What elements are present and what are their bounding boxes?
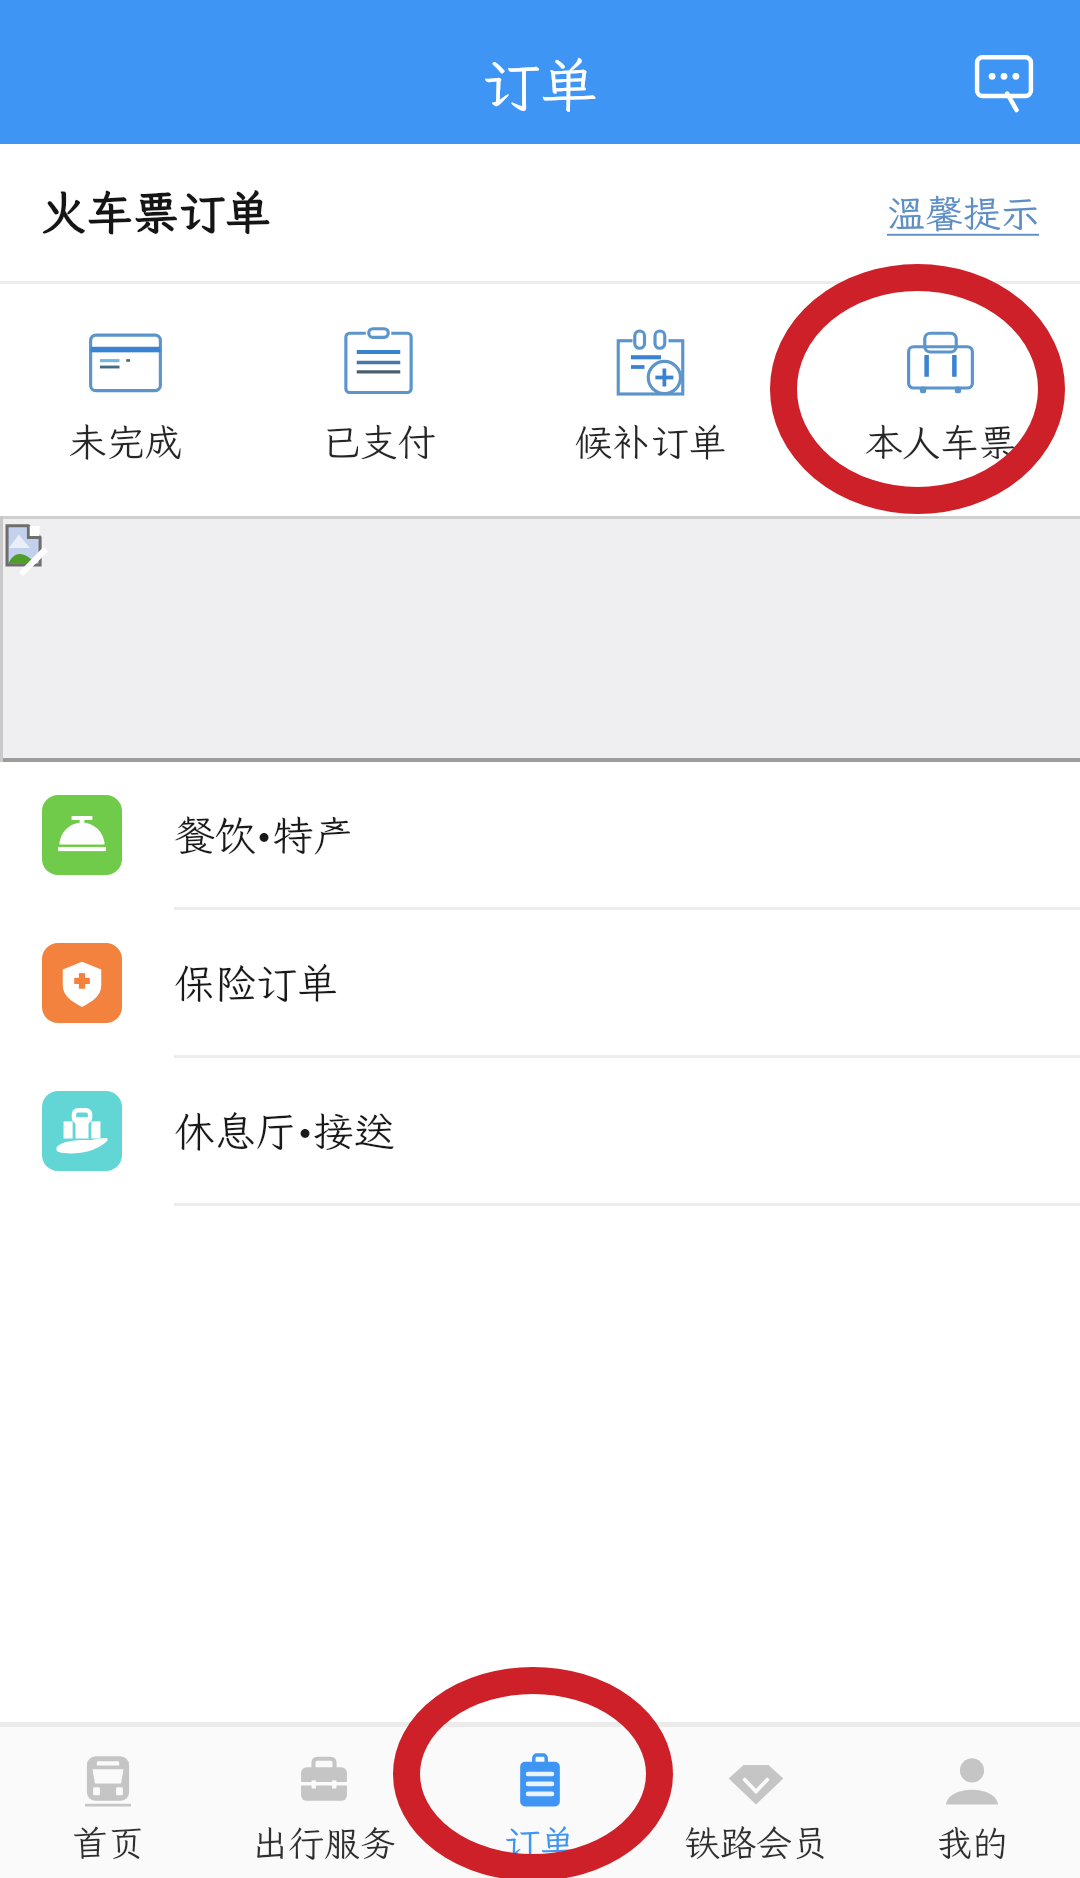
- button[interactable]: 餐饮•特产: [0, 762, 1080, 910]
- staticText: 出行服务: [252, 1819, 397, 1866]
- staticText: 订单: [482, 46, 599, 122]
- staticText: 首页: [72, 1819, 145, 1866]
- staticText: 我的: [936, 1819, 1009, 1866]
- button[interactable]: 已支付: [248, 284, 508, 516]
- staticText: 火车票订单: [41, 182, 271, 243]
- staticText: 温馨提示: [887, 188, 1040, 238]
- button[interactable]: 我的: [864, 1727, 1080, 1878]
- staticText: 已支付: [321, 417, 436, 467]
- staticText: 未完成: [68, 417, 183, 467]
- staticText: 本人车票: [864, 417, 1017, 467]
- button[interactable]: 本人车票: [810, 284, 1070, 516]
- button[interactable]: 首页: [0, 1727, 216, 1878]
- button[interactable]: 未完成: [0, 284, 255, 516]
- staticText: 订单: [504, 1819, 577, 1866]
- staticText: 铁路会员: [684, 1819, 829, 1866]
- button[interactable]: 出行服务: [216, 1727, 432, 1878]
- button[interactable]: 休息厅•接送: [0, 1058, 1080, 1206]
- staticText: 候补订单: [574, 417, 727, 467]
- button[interactable]: 铁路会员: [648, 1727, 864, 1878]
- button[interactable]: 订单: [432, 1727, 648, 1878]
- staticText: 休息厅•接送: [174, 1104, 396, 1158]
- button[interactable]: Customer service messages: [964, 24, 1060, 120]
- button[interactable]: 候补订单: [520, 284, 780, 516]
- staticText: 餐饮•特产: [174, 808, 355, 862]
- button[interactable]: 保险订单: [0, 910, 1080, 1058]
- button[interactable]: 温馨提示: [887, 188, 1040, 238]
- staticText: 保险订单: [174, 956, 338, 1010]
